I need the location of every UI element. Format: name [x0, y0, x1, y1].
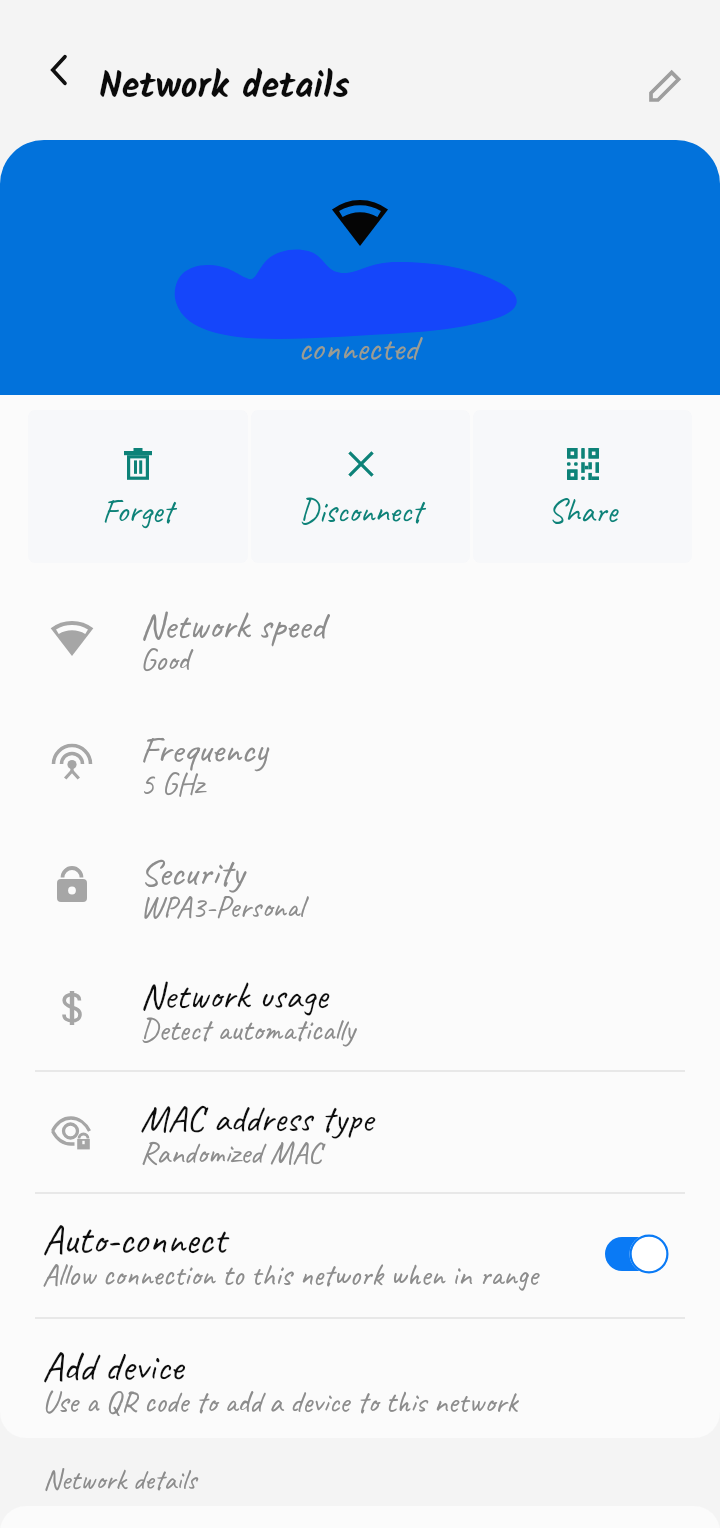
staticText: MAC address type — [140, 1095, 374, 1143]
button[interactable]: Edit network — [632, 52, 698, 118]
staticText: Network details — [99, 59, 350, 116]
button[interactable]: Auto-connect toggle, on — [605, 1230, 675, 1278]
button[interactable]: Share — [473, 410, 692, 563]
staticText: Auto-connect — [42, 1214, 227, 1266]
staticText: connected — [298, 325, 419, 370]
button[interactable]: MAC address type — [0, 1085, 720, 1195]
staticText: Share — [548, 490, 618, 532]
staticText: Security — [140, 849, 244, 897]
staticText: Network usage — [140, 972, 328, 1020]
staticText: Randomized MAC — [140, 1133, 322, 1172]
staticText: Detect automatically — [140, 1010, 355, 1049]
staticText: Use a QR code to add a device to this ne… — [42, 1382, 518, 1421]
button[interactable]: Disconnect — [251, 410, 470, 563]
staticText: 5 GHz — [140, 764, 204, 803]
button[interactable]: Auto-connect — [0, 1192, 720, 1317]
staticText: Add device — [42, 1341, 184, 1393]
staticText: Forget — [102, 490, 174, 532]
button[interactable]: Network usage — [0, 962, 720, 1072]
button[interactable]: Network speed — [0, 592, 720, 702]
button[interactable]: Add device — [0, 1317, 720, 1438]
button[interactable]: Frequency — [0, 716, 720, 826]
staticText: WPA3-Personal — [140, 887, 304, 926]
button[interactable]: Navigate up — [26, 37, 92, 103]
staticText: Frequency — [140, 726, 268, 774]
staticText: Network speed — [140, 602, 325, 650]
staticText: Network details — [43, 1461, 197, 1498]
staticText: Disconnect — [299, 490, 423, 532]
staticText: Good — [140, 640, 190, 679]
staticText: Allow connection to this network when in… — [42, 1255, 538, 1294]
button[interactable]: Security — [0, 839, 720, 949]
button[interactable]: Forget — [28, 410, 248, 563]
